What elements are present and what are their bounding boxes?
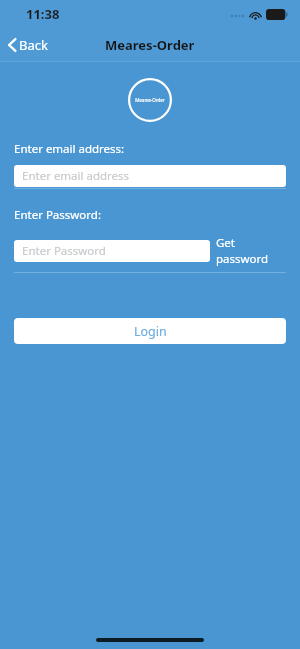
staticText: Meares-Order xyxy=(105,36,195,54)
staticText: Enter email address xyxy=(22,168,130,184)
staticText: Meares-Order xyxy=(135,97,165,103)
button[interactable]: Get password xyxy=(210,231,286,271)
staticText: Get password xyxy=(216,235,284,267)
button[interactable]: Enter Password xyxy=(14,240,210,262)
staticText: 11:38 xyxy=(26,5,60,23)
staticText: Back xyxy=(19,36,48,54)
staticText: Login xyxy=(134,323,167,340)
button[interactable]: Back xyxy=(0,32,58,58)
staticText: Enter Password xyxy=(22,243,106,259)
button[interactable]: Enter email address xyxy=(14,165,286,187)
staticText: Enter email address: xyxy=(14,141,125,157)
button[interactable]: Login xyxy=(14,318,286,344)
staticText: Enter Password: xyxy=(14,207,101,223)
